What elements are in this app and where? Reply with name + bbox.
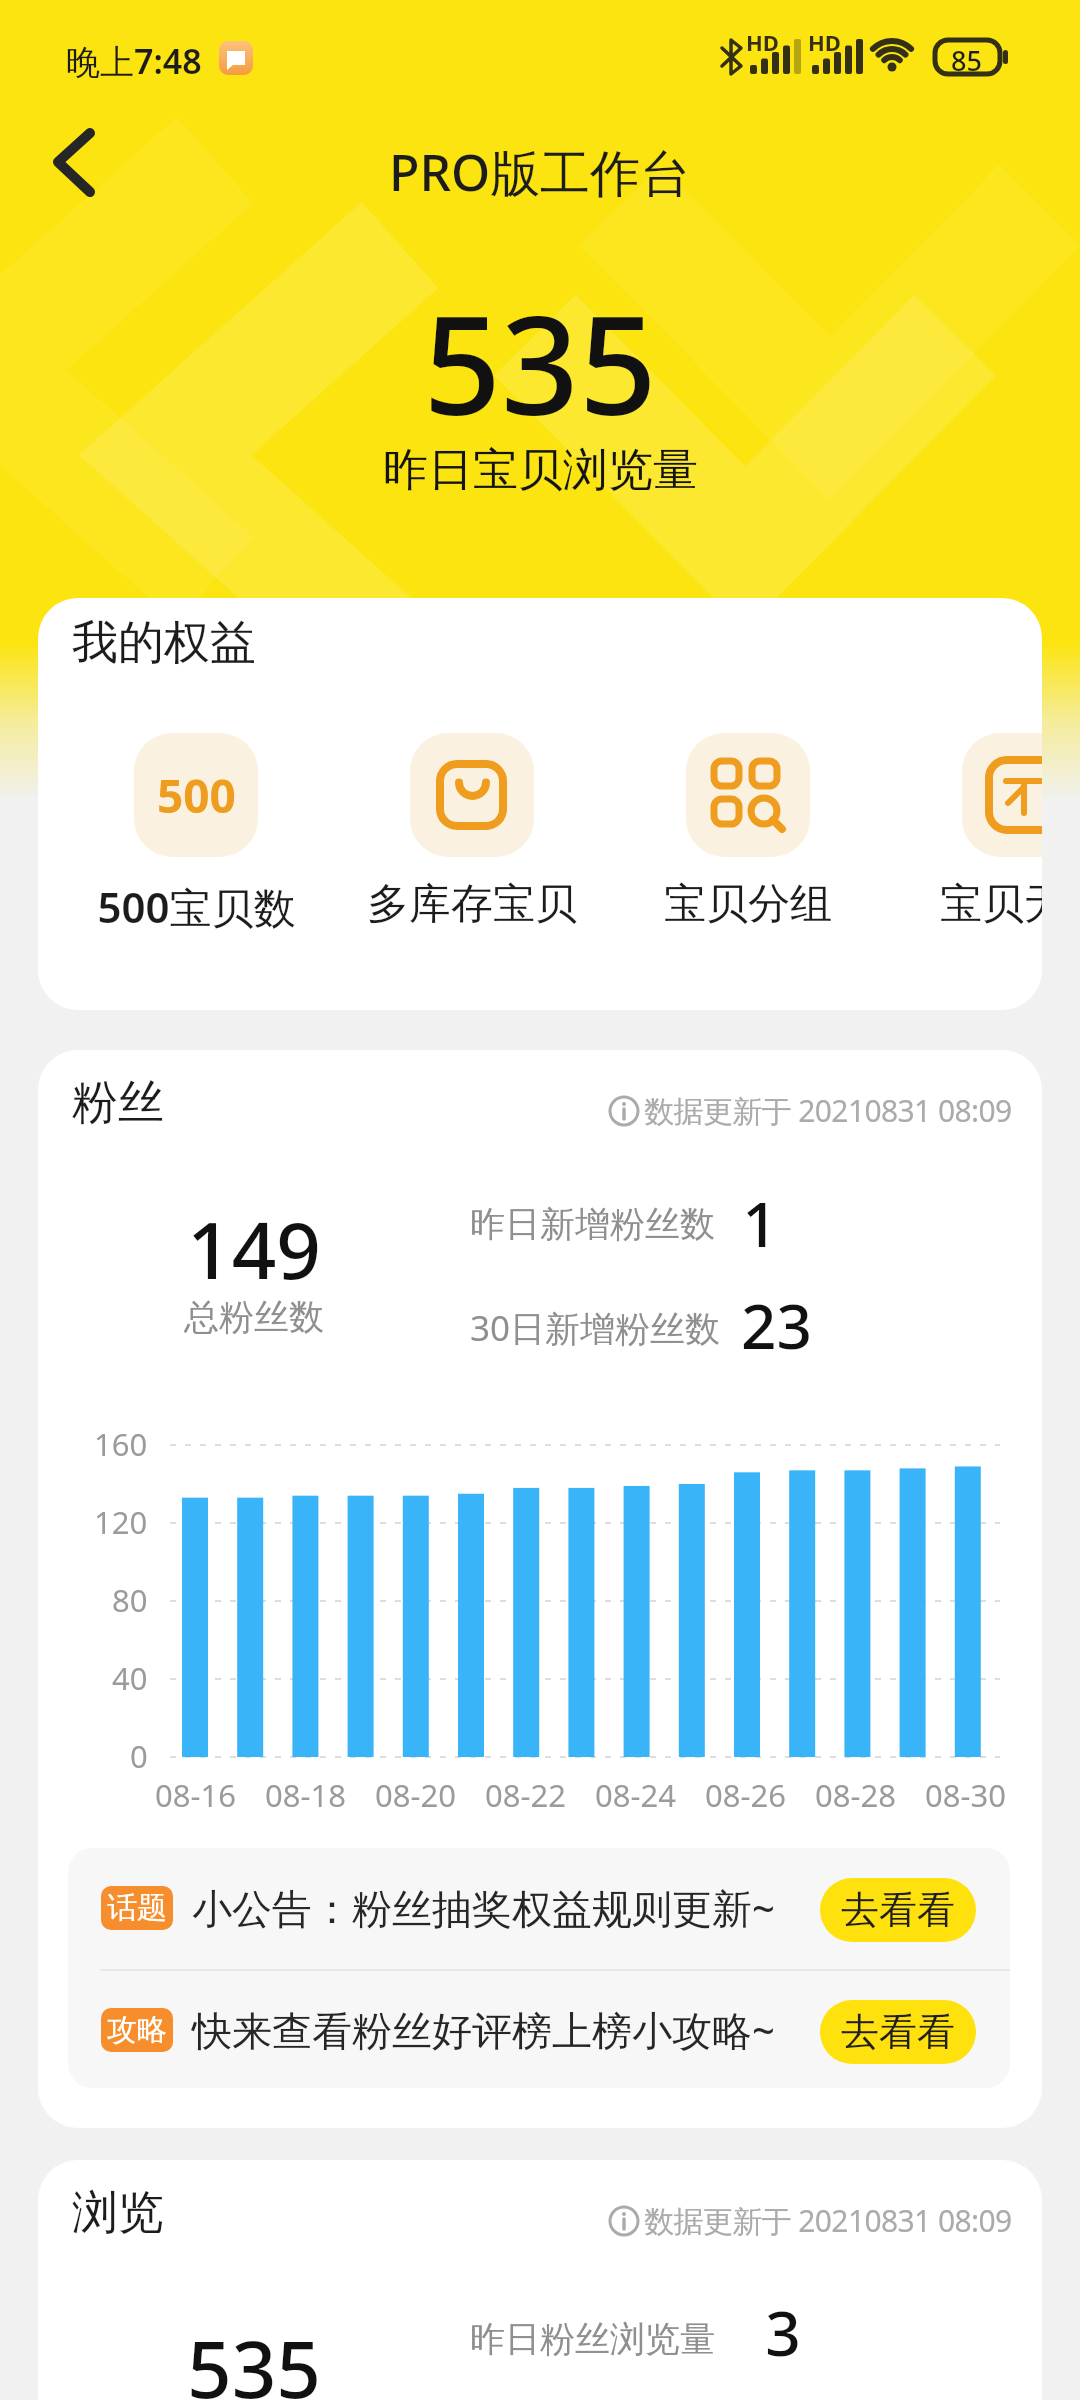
staticText: 昨日新增粉丝数 bbox=[470, 1202, 715, 1246]
button[interactable] bbox=[394, 726, 550, 986]
staticText: 30日新增粉丝数 bbox=[470, 1304, 721, 1352]
button[interactable]: 去看看 bbox=[820, 2000, 976, 2064]
staticText: 08-22 bbox=[485, 1774, 566, 1816]
staticText: 08-28 bbox=[815, 1774, 896, 1816]
staticText: 数据更新于 20210831 08:09 bbox=[644, 1090, 1012, 1131]
staticText: 晚上7:48 bbox=[66, 38, 202, 84]
staticText: 08-16 bbox=[155, 1774, 236, 1816]
staticText: 去看看 bbox=[841, 2008, 955, 2056]
staticText: HD bbox=[808, 27, 841, 57]
button[interactable]: 500 bbox=[118, 726, 274, 986]
staticText: 浏览 bbox=[72, 2184, 164, 2242]
staticText: 535 bbox=[187, 2315, 321, 2400]
staticText: 3 bbox=[765, 2290, 801, 2374]
staticText: 149 bbox=[187, 1196, 321, 1302]
staticText: 我的权益 bbox=[72, 614, 256, 672]
staticText: 宝贝分组 bbox=[664, 878, 832, 931]
staticText: 昨日粉丝浏览量 bbox=[470, 2317, 715, 2361]
staticText: 500 bbox=[157, 764, 236, 827]
staticText: 08-24 bbox=[595, 1774, 676, 1816]
staticText: 500宝贝数 bbox=[97, 878, 296, 935]
staticText: 去看看 bbox=[841, 1886, 955, 1934]
staticText: 85 bbox=[951, 42, 982, 79]
staticText: 话题 bbox=[107, 1889, 167, 1927]
button[interactable] bbox=[40, 124, 110, 200]
staticText: 总粉丝数 bbox=[184, 1295, 324, 1339]
staticText: 08-30 bbox=[925, 1774, 1006, 1816]
staticText: 攻略 bbox=[107, 2011, 167, 2049]
button[interactable] bbox=[946, 726, 1042, 986]
staticText: 昨日宝贝浏览量 bbox=[383, 442, 698, 499]
staticText: 160 bbox=[94, 1423, 148, 1465]
staticText: HD bbox=[746, 27, 779, 57]
button[interactable]: 攻略 bbox=[68, 1970, 1010, 2088]
staticText: 1 bbox=[742, 1181, 778, 1265]
button[interactable]: 话题 bbox=[68, 1848, 1010, 1969]
button[interactable]: 去看看 bbox=[820, 1878, 976, 1942]
staticText: 粉丝 bbox=[72, 1074, 164, 1132]
staticText: 23 bbox=[741, 1283, 812, 1367]
staticText: PRO版工作台 bbox=[389, 138, 691, 206]
staticText: 535 bbox=[423, 270, 657, 455]
staticText: 40 bbox=[112, 1657, 148, 1699]
staticText: 数据更新于 20210831 08:09 bbox=[644, 2200, 1012, 2241]
staticText: 多库存宝贝 bbox=[367, 878, 577, 931]
staticText: 小公告：粉丝抽奖权益规则更新~ bbox=[192, 1880, 775, 1935]
staticText: 08-20 bbox=[375, 1774, 456, 1816]
staticText: 08-18 bbox=[265, 1774, 346, 1816]
button[interactable] bbox=[670, 726, 826, 986]
staticText: 120 bbox=[94, 1501, 148, 1543]
staticText: 0 bbox=[130, 1735, 148, 1777]
staticText: 宝贝无忧 bbox=[940, 878, 1042, 931]
staticText: 快来查看粉丝好评榜上榜小攻略~ bbox=[192, 2002, 775, 2057]
staticText: 80 bbox=[112, 1579, 148, 1621]
staticText: 08-26 bbox=[705, 1774, 786, 1816]
